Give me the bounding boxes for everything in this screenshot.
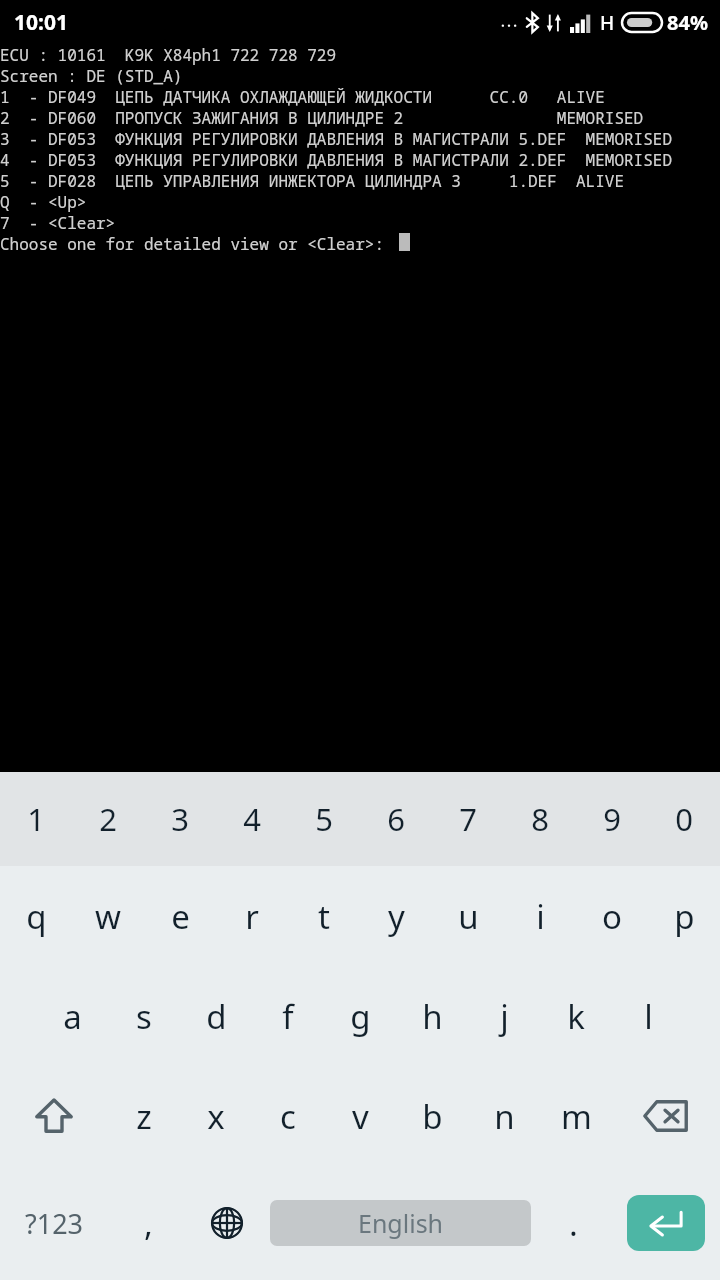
button[interactable]: m (540, 1066, 612, 1166)
staticText: ?123 (25, 1205, 84, 1242)
staticText: a (63, 994, 82, 1039)
button[interactable]: ?123 (0, 1166, 108, 1280)
button[interactable]: 9 (576, 772, 648, 866)
staticText: Q - <Up> (0, 191, 87, 212)
staticText: . (569, 1201, 578, 1246)
button[interactable]: 4 (216, 772, 288, 866)
button[interactable]: u (432, 866, 504, 966)
staticText: h (422, 994, 443, 1039)
staticText: 6 (387, 798, 405, 840)
button[interactable]: n (468, 1066, 540, 1166)
staticText: Choose one for detailed view or <Clear>: (0, 233, 385, 254)
staticText: b (422, 1094, 443, 1139)
staticText: z (136, 1094, 152, 1139)
button[interactable]: k (540, 966, 612, 1066)
staticText: 5 - DF028 ЦЕПЬ УПРАВЛЕНИЯ ИНЖЕКТОРА ЦИЛИ… (0, 170, 625, 191)
button[interactable]: f (252, 966, 324, 1066)
staticText: 2 (99, 798, 117, 840)
button[interactable]: t (288, 866, 360, 966)
button[interactable]: a (36, 966, 108, 1066)
staticText: f (282, 994, 294, 1039)
button[interactable]: z (108, 1066, 180, 1166)
button[interactable]: h (396, 966, 468, 1066)
staticText: 7 - <Clear> (0, 212, 116, 233)
staticText: n (494, 1094, 515, 1139)
button[interactable]: 7 (432, 772, 504, 866)
button[interactable]: 5 (288, 772, 360, 866)
button[interactable]: o (576, 866, 648, 966)
button[interactable]: w (72, 866, 144, 966)
button[interactable]: s (108, 966, 180, 1066)
button[interactable]: e (144, 866, 216, 966)
staticText: g (350, 994, 371, 1039)
button[interactable]: , (108, 1166, 189, 1280)
staticText: 7 (459, 798, 477, 840)
staticText: 9 (603, 798, 621, 840)
button[interactable]: Change language (189, 1166, 264, 1280)
staticText: 84% (667, 9, 708, 36)
button[interactable]: c (252, 1066, 324, 1166)
button[interactable]: English (270, 1200, 531, 1246)
staticText: 5 (315, 798, 333, 840)
staticText: 10:01 (14, 8, 68, 37)
staticText: r (245, 894, 259, 939)
staticText: u (458, 894, 479, 939)
staticText: q (26, 894, 47, 939)
button[interactable]: i (504, 866, 576, 966)
button[interactable]: p (648, 866, 720, 966)
button[interactable]: x (180, 1066, 252, 1166)
staticText: ECU : 10161 K9K X84ph1 722 728 729 (0, 44, 337, 65)
staticText: w (95, 894, 121, 939)
staticText: 1 - DF049 ЦЕПЬ ДАТЧИКА ОХЛАЖДАЮЩЕЙ ЖИДКО… (0, 86, 605, 107)
staticText: 4 - DF053 ФУНКЦИЯ РЕГУЛИРОВКИ ДАВЛЕНИЯ В… (0, 149, 673, 170)
button[interactable]: y (360, 866, 432, 966)
button[interactable]: Backspace (612, 1066, 720, 1166)
staticText: m (561, 1094, 592, 1139)
button[interactable]: b (396, 1066, 468, 1166)
button[interactable]: r (216, 866, 288, 966)
staticText: i (536, 894, 545, 939)
button[interactable]: l (612, 966, 684, 1066)
staticText: y (388, 894, 405, 939)
staticText: 3 - DF053 ФУНКЦИЯ РЕГУЛИРОВКИ ДАВЛЕНИЯ В… (0, 128, 673, 149)
button[interactable]: g (324, 966, 396, 1066)
button[interactable]: 0 (648, 772, 720, 866)
button[interactable]: Shift (0, 1066, 108, 1166)
button[interactable]: . (536, 1166, 611, 1280)
button[interactable]: j (468, 966, 540, 1066)
staticText: e (171, 894, 190, 939)
staticText: H (600, 10, 615, 36)
staticText: 4 (243, 798, 261, 840)
staticText: t (318, 894, 330, 939)
staticText: s (136, 994, 152, 1039)
staticText: Screen : DE (STD_A) (0, 65, 183, 86)
staticText: o (602, 894, 622, 939)
button[interactable]: Enter (627, 1195, 705, 1251)
staticText: c (280, 1094, 296, 1139)
staticText: 8 (531, 798, 549, 840)
button[interactable]: d (180, 966, 252, 1066)
staticText: 3 (171, 798, 189, 840)
staticText: d (206, 994, 227, 1039)
button[interactable]: 6 (360, 772, 432, 866)
button[interactable]: 8 (504, 772, 576, 866)
button[interactable]: 1 (0, 772, 72, 866)
button[interactable]: 2 (72, 772, 144, 866)
staticText: k (567, 994, 585, 1039)
staticText: j (500, 994, 509, 1039)
button[interactable]: 3 (144, 772, 216, 866)
staticText: 1 (27, 798, 45, 840)
staticText: 0 (675, 798, 693, 840)
staticText: English (358, 1206, 444, 1240)
staticText: , (144, 1201, 153, 1246)
staticText: v (352, 1094, 369, 1139)
staticText: l (644, 994, 653, 1039)
button[interactable]: q (0, 866, 72, 966)
staticText: 2 - DF060 ПРОПУСК ЗАЖИГАНИЯ В ЦИЛИНДРЕ 2… (0, 107, 644, 128)
staticText: p (674, 894, 695, 939)
staticText: x (207, 1094, 225, 1139)
button[interactable]: v (324, 1066, 396, 1166)
